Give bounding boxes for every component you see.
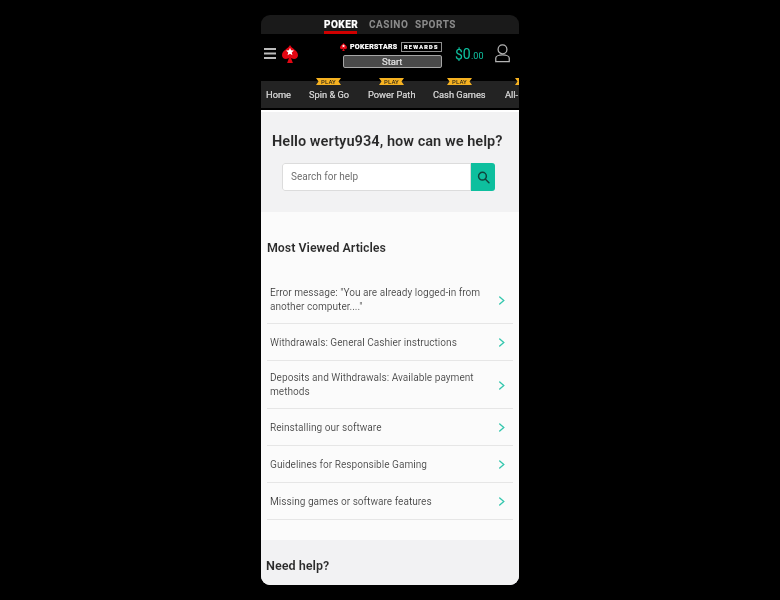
- button[interactable]: Home: [261, 81, 298, 108]
- button[interactable]: SPORTS: [410, 15, 461, 34]
- staticText: Most Viewed Articles: [267, 240, 386, 255]
- button[interactable]: Start: [343, 55, 442, 68]
- staticText: Deposits and Withdrawals: Available paym…: [270, 372, 493, 398]
- button[interactable]: Search for help: [282, 163, 471, 191]
- staticText: Hello wertyu934, how can we help?: [272, 132, 503, 149]
- button[interactable]: Menu: [261, 30, 281, 77]
- button[interactable]: CASINO: [364, 15, 414, 34]
- button[interactable]: Account: [490, 29, 514, 76]
- staticText: PLAY: [452, 78, 467, 85]
- staticText: .00: [471, 51, 484, 62]
- staticText: Search for help: [291, 171, 359, 183]
- button[interactable]: All-In: [499, 81, 519, 108]
- button[interactable]: Deposits and Withdrawals: Available paym…: [261, 361, 519, 409]
- staticText: PLAY: [321, 78, 336, 85]
- button[interactable]: Missing games or software features: [261, 483, 519, 520]
- staticText: CASINO: [369, 19, 409, 31]
- staticText: Missing games or software features: [270, 496, 493, 508]
- staticText: All-In: [505, 89, 519, 100]
- button[interactable]: Spin & Go: [303, 81, 356, 108]
- staticText: Start: [382, 56, 403, 67]
- staticText: Reinstalling our software: [270, 422, 493, 434]
- button[interactable]: Reinstalling our software: [261, 409, 519, 446]
- staticText: Guidelines for Responsible Gaming: [270, 459, 493, 471]
- button[interactable]: Guidelines for Responsible Gaming: [261, 446, 519, 483]
- staticText: Withdrawals: General Cashier instruction…: [270, 337, 493, 349]
- staticText: PLAY: [384, 78, 399, 85]
- button[interactable]: POKER: [319, 15, 364, 34]
- button[interactable]: PokerStars home: [278, 41, 302, 66]
- staticText: POKERSTARS: [350, 43, 398, 51]
- staticText: Error message: "You are already logged-i…: [270, 287, 493, 313]
- button[interactable]: Withdrawals: General Cashier instruction…: [261, 324, 519, 361]
- button[interactable]: Search: [471, 163, 495, 191]
- staticText: Home: [266, 89, 292, 100]
- staticText: Power Path: [368, 89, 416, 100]
- staticText: Need help?: [266, 558, 330, 573]
- button[interactable]: Error message: "You are already logged-i…: [261, 276, 519, 324]
- staticText: Cash Games: [433, 89, 486, 100]
- button[interactable]: Power Path: [362, 81, 422, 108]
- button[interactable]: $0: [450, 30, 489, 77]
- staticText: Spin & Go: [309, 89, 350, 100]
- staticText: $0: [455, 46, 471, 62]
- staticText: POKER: [324, 19, 359, 31]
- button[interactable]: Cash Games: [427, 81, 492, 108]
- staticText: SPORTS: [415, 19, 456, 31]
- staticText: REWARDS: [404, 44, 439, 50]
